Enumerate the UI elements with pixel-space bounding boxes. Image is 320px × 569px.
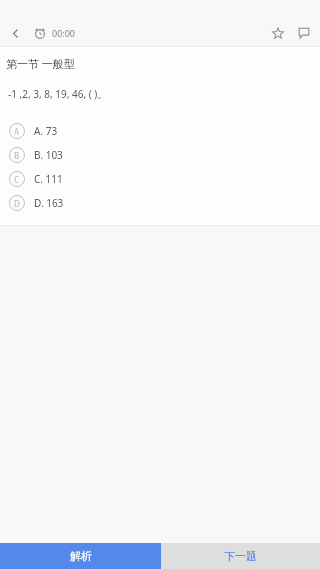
staticText: 解析: [70, 549, 92, 563]
staticText: -1 ,2, 3, 8, 19, 46, ( )。: [8, 87, 108, 101]
button[interactable]: C: [0, 167, 320, 191]
button[interactable]: Feedback: [291, 20, 317, 46]
button[interactable]: 下一题: [161, 543, 320, 569]
staticText: C. 111: [34, 172, 63, 186]
staticText: D: [14, 198, 20, 209]
button[interactable]: A: [0, 119, 320, 143]
staticText: B: [14, 150, 20, 161]
staticText: A. 73: [34, 124, 58, 138]
button[interactable]: B: [0, 143, 320, 167]
button[interactable]: Favorite: [265, 20, 291, 46]
staticText: C: [14, 174, 20, 185]
button[interactable]: D: [0, 191, 320, 215]
staticText: D. 163: [34, 196, 64, 210]
staticText: 下一题: [224, 549, 257, 563]
button[interactable]: 解析: [0, 543, 161, 569]
staticText: 00:00: [52, 27, 76, 39]
staticText: A: [14, 126, 20, 137]
staticText: B. 103: [34, 148, 63, 162]
button[interactable]: Back: [2, 20, 28, 46]
staticText: 第一节 一般型: [6, 56, 75, 71]
